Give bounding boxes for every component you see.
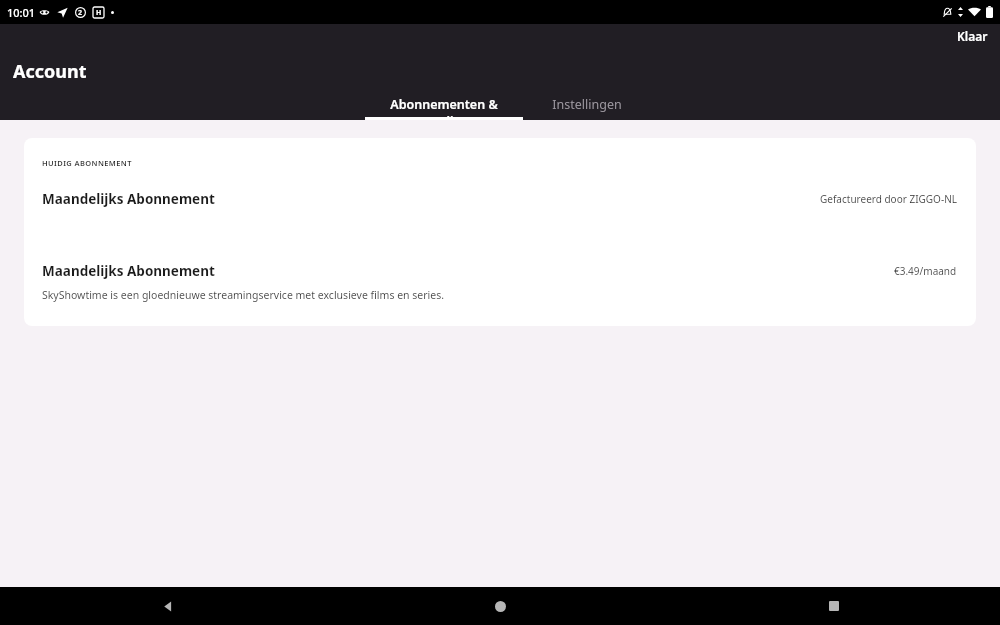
staticText: Gefactureerd door ZIGGO-NL (820, 192, 957, 206)
staticText: HUIDIG ABONNEMENT (42, 158, 132, 168)
button[interactable]: HUIDIG ABONNEMENT (24, 138, 976, 326)
button[interactable]: Instellingen (539, 96, 635, 120)
staticText: €3.49/maand (894, 264, 957, 278)
staticText: 2 (78, 8, 83, 18)
button[interactable]: Klaar (945, 25, 1000, 47)
staticText: 10:01 (7, 5, 36, 20)
staticText: H (96, 8, 102, 18)
staticText: SkyShowtime is een gloednieuwe streaming… (42, 288, 445, 302)
button[interactable]: Recent apps (667, 587, 1000, 625)
staticText: Abonnementen & Betaling (365, 96, 523, 120)
button[interactable]: Home (334, 587, 667, 625)
staticText: Account (13, 59, 87, 84)
staticText: Maandelijks Abonnement (42, 262, 215, 280)
button[interactable]: Abonnementen & Betaling (365, 96, 523, 120)
button[interactable]: Back (0, 587, 334, 625)
staticText: Instellingen (552, 96, 622, 113)
staticText: Klaar (957, 28, 988, 44)
staticText: Maandelijks Abonnement (42, 190, 215, 208)
